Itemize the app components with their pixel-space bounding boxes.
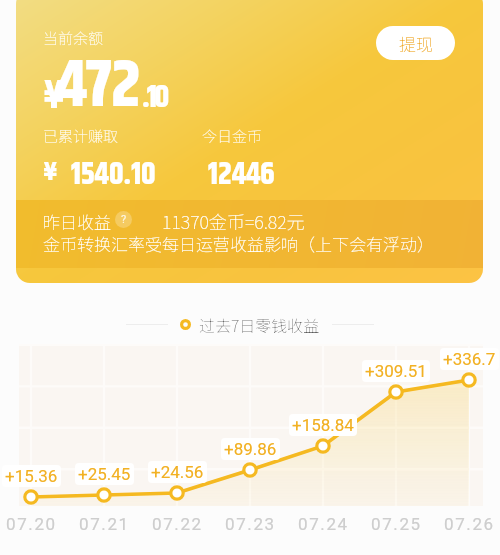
staticText: 472: [56, 36, 140, 138]
staticText: 11370金币=6.82元: [162, 208, 305, 234]
staticText: ¥: [43, 67, 65, 127]
staticText: 07.20: [6, 514, 57, 534]
staticText: 07.21: [79, 514, 130, 534]
staticText: 过去7日零钱收益: [199, 313, 320, 336]
staticText: 07.25: [371, 514, 422, 534]
staticText: +309.51: [365, 361, 427, 381]
staticText: 07.22: [152, 514, 203, 534]
staticText: 当前余额: [43, 27, 104, 49]
staticText: .10: [142, 73, 167, 122]
staticText: 07.26: [444, 514, 495, 534]
staticText: 昨日收益: [43, 209, 111, 234]
staticText: 07.23: [225, 514, 276, 534]
staticText: 金币转换汇率受每日运营收益影响（上下会有浮动）: [43, 231, 434, 256]
button[interactable]: 提现: [376, 26, 455, 60]
staticText: +158.84: [292, 415, 354, 435]
staticText: 今日金币: [202, 125, 263, 147]
staticText: 提现: [399, 31, 433, 56]
button[interactable]: 帮助: [115, 211, 132, 228]
staticText: ¥: [43, 153, 58, 193]
staticText: +89.86: [224, 439, 277, 459]
staticText: +25.45: [78, 464, 131, 484]
staticText: +336.7: [443, 349, 496, 369]
staticText: +15.36: [5, 466, 58, 486]
staticText: +24.56: [151, 462, 204, 482]
staticText: ?: [121, 213, 127, 226]
staticText: 07.24: [298, 514, 349, 534]
staticText: 已累计赚取: [43, 125, 119, 147]
staticText: 12446: [208, 151, 275, 198]
staticText: 1540.10: [71, 151, 156, 198]
